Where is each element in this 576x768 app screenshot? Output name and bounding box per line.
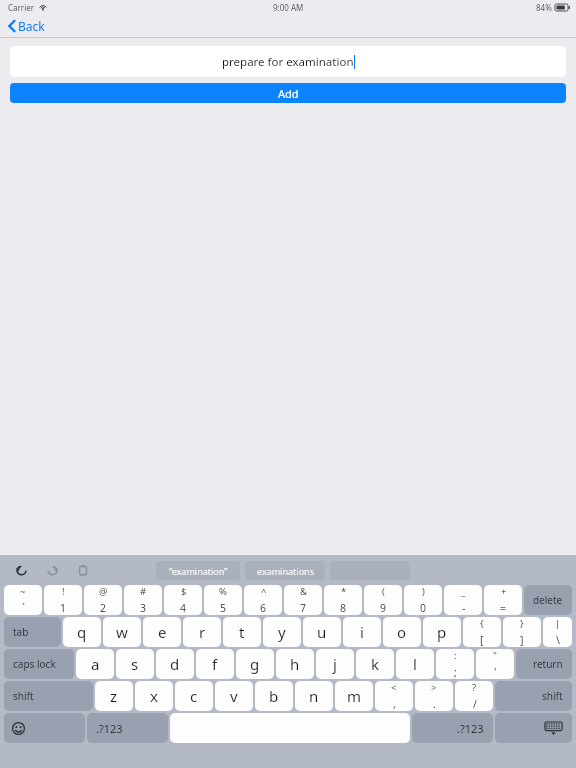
button[interactable]: prepare for examination: [10, 46, 566, 77]
staticText: ~: [20, 585, 26, 598]
staticText: 4: [180, 601, 187, 615]
staticText: a: [91, 654, 100, 674]
button[interactable]: _: [444, 585, 482, 615]
button[interactable]: k: [356, 649, 394, 679]
button[interactable]: examinations: [245, 561, 325, 580]
button[interactable]: .?123: [412, 713, 493, 743]
button[interactable]: h: [276, 649, 314, 679]
staticText: 3: [140, 601, 147, 615]
button[interactable]: %: [204, 585, 242, 615]
button[interactable]: q: [63, 617, 101, 647]
staticText: examinations: [257, 565, 314, 577]
staticText: c: [190, 686, 198, 706]
button[interactable]: ~: [4, 585, 42, 615]
button[interactable]: <: [375, 681, 413, 711]
staticText: n: [309, 686, 319, 706]
button[interactable]: Redo: [41, 559, 63, 581]
staticText: $: [181, 585, 187, 598]
button[interactable]: #: [124, 585, 162, 615]
staticText: >: [431, 681, 437, 694]
button[interactable]: d: [156, 649, 194, 679]
staticText: y: [278, 622, 286, 642]
button[interactable]: i: [343, 617, 381, 647]
button[interactable]: p: [423, 617, 461, 647]
button[interactable]: l: [396, 649, 434, 679]
button[interactable]: ?: [455, 681, 493, 711]
button[interactable]: return: [516, 649, 572, 679]
staticText: <: [391, 681, 397, 694]
button[interactable]: e: [143, 617, 181, 647]
button[interactable]: b: [255, 681, 293, 711]
staticText: tab: [13, 625, 29, 639]
button[interactable]: *: [324, 585, 362, 615]
button[interactable]: delete: [524, 585, 572, 615]
button[interactable]: [170, 713, 410, 743]
staticText: ): [422, 585, 425, 598]
button[interactable]: y: [263, 617, 301, 647]
button[interactable]: }: [503, 617, 541, 647]
staticText: ]: [520, 633, 524, 647]
button[interactable]: x: [135, 681, 173, 711]
staticText: &: [300, 585, 307, 598]
staticText: e: [158, 622, 167, 642]
button[interactable]: m: [335, 681, 373, 711]
staticText: ?: [472, 681, 477, 694]
staticText: 9: [380, 601, 387, 615]
button[interactable]: ): [404, 585, 442, 615]
button[interactable]: Add: [10, 83, 566, 103]
button[interactable]: j: [316, 649, 354, 679]
button[interactable]: shift: [4, 681, 93, 711]
button[interactable]: Paste: [72, 559, 94, 581]
staticText: @: [99, 585, 108, 598]
button[interactable]: c: [175, 681, 213, 711]
button[interactable]: .?123: [87, 713, 168, 743]
button[interactable]: v: [215, 681, 253, 711]
staticText: \: [556, 633, 560, 647]
button[interactable]: &: [284, 585, 322, 615]
staticText: #: [140, 585, 147, 598]
button[interactable]: g: [236, 649, 274, 679]
button[interactable]: $: [164, 585, 202, 615]
button[interactable]: {: [463, 617, 501, 647]
button[interactable]: tab: [4, 617, 61, 647]
staticText: caps lock: [13, 657, 56, 671]
staticText: t: [239, 622, 245, 642]
button[interactable]: f: [196, 649, 234, 679]
staticText: d: [170, 654, 180, 674]
staticText: k: [371, 654, 380, 674]
staticText: 2: [100, 601, 107, 615]
staticText: %: [219, 585, 227, 598]
button[interactable]: “examination”: [156, 561, 240, 580]
button[interactable]: ": [476, 649, 514, 679]
button[interactable]: |: [543, 617, 572, 647]
button[interactable]: +: [484, 585, 522, 615]
button[interactable]: o: [383, 617, 421, 647]
button[interactable]: ^: [244, 585, 282, 615]
button[interactable]: Undo: [10, 559, 32, 581]
button[interactable]: Hide keyboard: [495, 713, 572, 743]
button[interactable]: Emoji: [4, 713, 85, 743]
button[interactable]: t: [223, 617, 261, 647]
staticText: `: [22, 601, 25, 615]
staticText: u: [317, 622, 327, 642]
button[interactable]: >: [415, 681, 453, 711]
button[interactable]: shift: [495, 681, 572, 711]
staticText: p: [437, 622, 447, 642]
staticText: 6: [260, 601, 267, 615]
staticText: *: [341, 585, 347, 598]
button[interactable]: n: [295, 681, 333, 711]
button[interactable]: Back: [5, 16, 48, 36]
button[interactable]: u: [303, 617, 341, 647]
button[interactable]: caps lock: [4, 649, 74, 679]
button[interactable]: :: [436, 649, 474, 679]
button[interactable]: w: [103, 617, 141, 647]
button[interactable]: s: [116, 649, 154, 679]
button[interactable]: r: [183, 617, 221, 647]
button[interactable]: (: [364, 585, 402, 615]
button[interactable]: @: [84, 585, 122, 615]
button[interactable]: z: [95, 681, 133, 711]
button[interactable]: a: [76, 649, 114, 679]
button[interactable]: !: [44, 585, 82, 615]
staticText: “examination”: [169, 565, 228, 577]
